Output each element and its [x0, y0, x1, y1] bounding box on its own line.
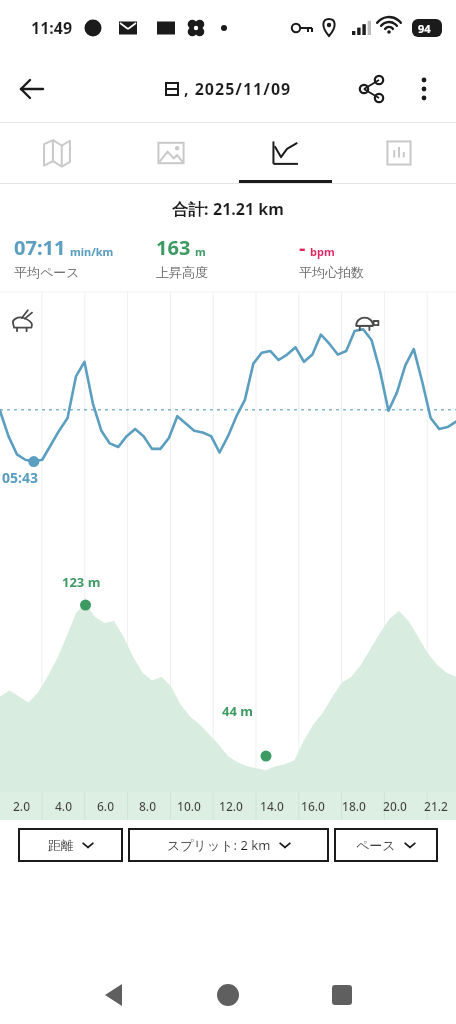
staticText: 18.0: [342, 798, 366, 814]
staticText: 21.2: [424, 798, 448, 814]
staticText: 上昇高度: [156, 264, 208, 280]
staticText: 平均ペース: [14, 264, 80, 280]
button[interactable]: More options: [402, 67, 446, 111]
staticText: -: [299, 234, 306, 261]
button[interactable]: Photos: [114, 123, 228, 183]
staticText: 12.0: [219, 798, 243, 814]
staticText: 8.0: [139, 798, 156, 814]
staticText: 合計:: [172, 198, 213, 220]
staticText: 10.0: [177, 798, 201, 814]
staticText: ペース: [356, 837, 396, 853]
button[interactable]: Back: [90, 971, 138, 1019]
staticText: 20.0: [383, 798, 407, 814]
staticText: , 2025/11/09: [184, 78, 292, 100]
staticText: 11:49: [31, 17, 73, 39]
button[interactable]: 距離: [18, 828, 123, 862]
button[interactable]: Recent apps: [318, 971, 366, 1019]
button[interactable]: Home: [204, 971, 252, 1019]
button[interactable]: Statistics: [342, 123, 456, 183]
staticText: 05:43: [2, 468, 38, 487]
button[interactable]: スプリット: 2 km: [128, 828, 329, 862]
staticText: 2.0: [13, 798, 30, 814]
staticText: スプリット: 2 km: [167, 836, 271, 854]
button[interactable]: Map: [0, 123, 114, 183]
button[interactable]: ペース: [334, 828, 438, 862]
staticText: 14.0: [260, 798, 284, 814]
button[interactable]: Charts: [228, 123, 342, 183]
button[interactable]: Back: [8, 65, 56, 113]
staticText: 07:11: [14, 234, 66, 261]
staticText: 16.0: [301, 798, 325, 814]
staticText: bpm: [310, 244, 335, 259]
staticText: 平均心拍数: [299, 264, 364, 280]
staticText: min/km: [70, 244, 114, 259]
staticText: 距離: [48, 837, 74, 853]
staticText: 94: [418, 21, 431, 36]
staticText: 6.0: [97, 798, 114, 814]
staticText: m: [195, 244, 206, 259]
staticText: 21.21 km: [213, 198, 284, 220]
staticText: 163: [156, 234, 191, 261]
staticText: 4.0: [55, 798, 72, 814]
staticText: 123 m: [62, 573, 101, 591]
button[interactable]: Share: [350, 67, 394, 111]
staticText: 44 m: [222, 702, 253, 720]
